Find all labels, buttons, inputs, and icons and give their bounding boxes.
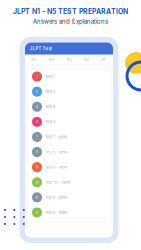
staticText: Test 9 - New xyxy=(45,165,67,169)
staticText: 4 xyxy=(36,105,38,109)
staticText: N4 xyxy=(49,57,54,62)
staticText: Test 1 xyxy=(45,74,55,79)
button[interactable]: N1 xyxy=(95,54,113,64)
button[interactable]: 5 xyxy=(26,144,111,160)
staticText: 9 xyxy=(36,165,38,169)
button[interactable]: 8 xyxy=(26,190,111,205)
staticText: Test 3 xyxy=(45,119,55,124)
staticText: 3 xyxy=(36,120,38,124)
staticText: JLPT N1 - N5 TEST PREPARATION xyxy=(13,7,128,16)
button[interactable]: N2 xyxy=(78,54,95,64)
button[interactable]: 1 xyxy=(26,69,111,84)
staticText: N3 xyxy=(66,57,71,62)
staticText: N2 xyxy=(84,57,89,62)
button[interactable]: 4 xyxy=(26,99,111,114)
button[interactable]: 10 xyxy=(26,175,111,190)
staticText: Test 8 - New xyxy=(45,195,67,200)
staticText: Test 2 xyxy=(45,89,55,94)
button[interactable]: N5 xyxy=(25,54,43,64)
staticText: 2 xyxy=(36,90,38,94)
button[interactable]: 3 xyxy=(26,114,111,129)
staticText: Answers and Explanations xyxy=(33,18,108,25)
button[interactable]: N3 xyxy=(60,54,78,64)
button[interactable]: N4 xyxy=(43,54,60,64)
staticText: Test 5 - New xyxy=(45,150,67,154)
staticText: 6 xyxy=(36,210,38,215)
staticText: 8 xyxy=(36,195,38,199)
staticText: 10 xyxy=(35,180,38,184)
staticText: Test 6 - New xyxy=(45,210,67,215)
button[interactable]: 6 xyxy=(26,205,111,220)
staticText: JLPT Test xyxy=(29,46,52,51)
staticText: N5 xyxy=(31,57,36,62)
staticText: Test 4 xyxy=(45,104,56,109)
staticText: N1 xyxy=(102,57,107,62)
staticText: 7 xyxy=(36,135,38,139)
button[interactable]: 9 xyxy=(26,160,111,175)
button[interactable]: 7 xyxy=(26,129,111,144)
staticText: Test 7 - New xyxy=(45,134,67,139)
staticText: 5 xyxy=(36,150,38,154)
button[interactable]: 2 xyxy=(26,84,111,99)
staticText: Test 10 - New xyxy=(45,180,70,185)
staticText: 1 xyxy=(36,74,37,79)
